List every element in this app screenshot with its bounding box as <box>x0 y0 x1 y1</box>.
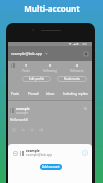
staticText: Bookmarks <box>64 77 80 81</box>
button[interactable]: Pinned <box>28 92 39 96</box>
button[interactable]: example <box>10 107 88 115</box>
button[interactable]: 1 <box>22 63 30 73</box>
staticText: example@bsb.app <box>26 153 53 157</box>
staticText: 0 <box>76 63 78 68</box>
staticText: example <box>16 111 29 115</box>
staticText: Posts <box>22 69 30 73</box>
staticText: Multi-account <box>24 3 80 14</box>
staticText: example@bsb.app <box>11 51 43 56</box>
staticText: 1 <box>25 63 27 68</box>
button[interactable]: Edit profile <box>22 76 51 82</box>
button[interactable]: Add account <box>40 164 62 170</box>
button[interactable]: 0 <box>70 63 84 73</box>
button[interactable]: 0 <box>43 63 57 73</box>
button[interactable]: Share <box>39 128 43 132</box>
staticText: Edit profile <box>29 77 45 81</box>
button[interactable]: Including replies <box>63 92 88 96</box>
button[interactable]: Repost <box>21 128 25 132</box>
staticText: Posts <box>11 92 20 96</box>
staticText: Including replies <box>63 92 88 96</box>
button[interactable]: Bookmarks <box>57 76 87 82</box>
button[interactable]: Ideas <box>46 92 55 96</box>
staticText: example <box>16 107 30 111</box>
staticText: Hello world! <box>10 118 28 122</box>
staticText: example <box>26 149 40 153</box>
button[interactable]: Like <box>30 128 34 132</box>
other: Selected account <box>82 150 88 156</box>
other: Remove account <box>13 151 18 156</box>
staticText: Ideas <box>46 92 55 96</box>
staticText: 0 <box>49 63 51 68</box>
staticText: Add account <box>42 165 60 169</box>
button[interactable]: Reply <box>12 128 16 132</box>
staticText: · 1h <box>82 107 88 111</box>
staticText: Followers <box>70 69 84 73</box>
staticText: Pinned <box>28 92 39 96</box>
button[interactable]: Remove account <box>13 149 88 157</box>
button[interactable]: Account avatar <box>83 51 89 57</box>
staticText: Following <box>43 69 57 73</box>
button[interactable]: Posts <box>11 92 20 96</box>
